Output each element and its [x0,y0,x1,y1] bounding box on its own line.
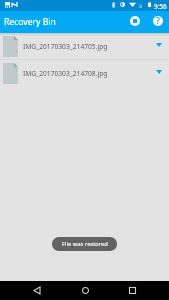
button[interactable]: Recents [122,281,142,300]
button[interactable]: Help [149,12,167,30]
staticText: Recovery Bin [4,16,56,28]
button[interactable]: Back [27,281,47,300]
button[interactable]: Home [75,281,95,300]
staticText: ? [156,15,160,27]
staticText: IMG_20170303_214705.jpg [23,42,108,51]
button[interactable]: IMG_20170303_214705.jpg [0,33,169,59]
staticText: File was restored [62,240,108,248]
button[interactable]: Stop [126,12,144,30]
staticText: IMG_20170303_214708.jpg [23,69,108,78]
button[interactable]: IMG_20170303_214708.jpg [0,60,169,86]
staticText: 9:56 [154,2,167,11]
